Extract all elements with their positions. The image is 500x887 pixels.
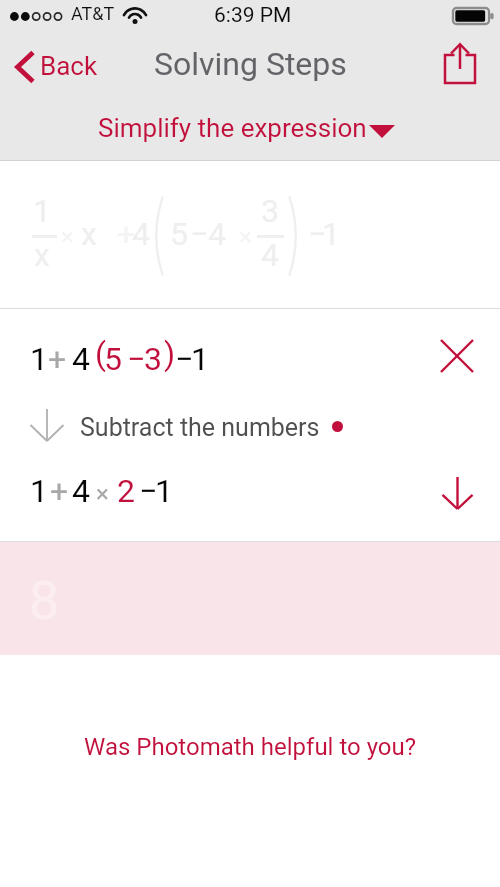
staticText: 3 <box>144 340 162 378</box>
staticText: − <box>127 340 146 378</box>
staticText: Solving Steps <box>154 45 347 83</box>
staticText: 1 <box>33 192 51 230</box>
staticText: 1 <box>155 472 173 510</box>
staticText: ( <box>95 335 106 373</box>
staticText: 2 <box>117 472 135 510</box>
staticText: Simplify the expression <box>98 113 367 143</box>
staticText: x <box>81 215 97 253</box>
staticText: AT&T <box>71 3 115 24</box>
staticText: 1 <box>30 340 48 378</box>
staticText: 6:39 PM <box>214 3 292 28</box>
staticText: 4 <box>132 215 150 253</box>
staticText: 4 <box>261 236 279 274</box>
staticText: 1 <box>30 472 48 510</box>
staticText: + <box>117 215 136 253</box>
staticText: − <box>139 472 158 510</box>
staticText: × <box>61 223 74 251</box>
staticText: Back <box>40 51 98 81</box>
button[interactable]: Was Photomath helpful to you? <box>70 722 430 772</box>
staticText: + <box>48 340 67 378</box>
staticText: Was Photomath helpful to you? <box>84 733 417 761</box>
staticText: ) <box>164 335 176 373</box>
staticText: × <box>239 223 252 251</box>
staticText: + <box>50 472 69 510</box>
button[interactable]: Back <box>2 40 112 98</box>
staticText: × <box>96 480 109 508</box>
staticText: 1 <box>191 340 209 378</box>
staticText: − <box>190 215 209 253</box>
staticText: 1 <box>322 215 340 253</box>
staticText: 4 <box>72 340 90 378</box>
staticText: x <box>34 236 50 274</box>
staticText: 8 <box>29 569 60 632</box>
staticText: 3 <box>261 192 279 230</box>
staticText: − <box>308 215 327 253</box>
staticText: Subtract the numbers <box>80 413 320 442</box>
staticText: 4 <box>208 215 226 253</box>
button[interactable]: Close <box>432 331 482 381</box>
button[interactable]: Share <box>430 36 490 94</box>
button[interactable]: 1 <box>20 454 420 506</box>
staticText: − <box>175 340 194 378</box>
staticText: 4 <box>72 472 90 510</box>
staticText: 5 <box>170 215 188 253</box>
button[interactable]: Simplify the expression <box>88 104 408 152</box>
staticText: 5 <box>104 340 122 378</box>
button[interactable]: 1 <box>20 322 420 374</box>
button[interactable]: Next step <box>432 468 482 518</box>
